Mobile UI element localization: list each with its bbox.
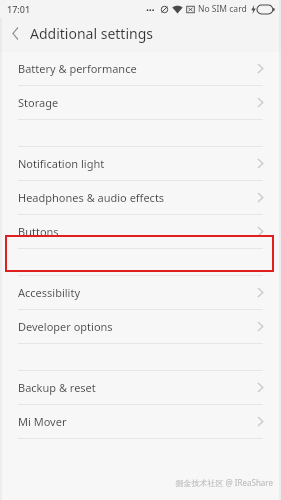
staticText: No SIM card [198,3,247,15]
button[interactable]: Developer options [0,310,281,343]
button[interactable]: Battery & performance [0,52,281,85]
button[interactable]: Storage [0,86,281,119]
staticText: Storage [18,95,257,110]
staticText: Accessibility [18,285,257,300]
staticText: Headphones & audio effects [18,190,257,205]
staticText: Developer options [18,319,257,334]
staticText: Backup & reset [18,380,257,395]
button[interactable]: Back [0,18,30,48]
button[interactable]: Buttons [0,215,281,248]
button[interactable]: Headphones & audio effects [0,181,281,214]
staticText: 掘金技术社区 @ IReaShare [175,477,273,488]
staticText: Mi Mover [18,414,257,429]
staticText: Additional settings [30,24,153,43]
button[interactable]: Mi Mover [0,405,281,438]
button[interactable]: Accessibility [0,276,281,309]
button[interactable]: Notification light [0,147,281,180]
staticText: 17:01 [7,3,31,15]
button[interactable]: Backup & reset [0,371,281,404]
staticText: Battery & performance [18,61,257,76]
staticText: Buttons [18,224,257,239]
staticText: Notification light [18,156,257,171]
